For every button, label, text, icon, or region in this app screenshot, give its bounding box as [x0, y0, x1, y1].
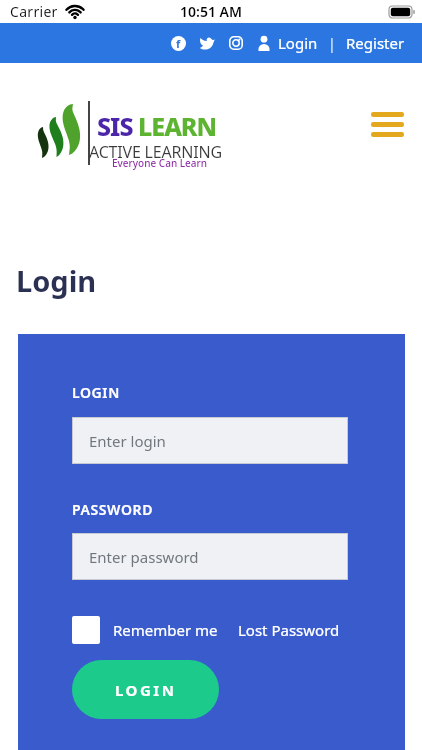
- staticText: Register: [346, 33, 405, 53]
- staticText: |: [328, 34, 336, 53]
- staticText: LOGIN: [72, 383, 120, 402]
- staticText: PASSWORD: [72, 500, 153, 519]
- button[interactable]: [229, 36, 243, 50]
- staticText: f: [176, 36, 181, 51]
- staticText: Login: [278, 33, 318, 53]
- staticText: Everyone Can Learn: [112, 156, 208, 170]
- staticText: LEARN: [138, 109, 217, 143]
- staticText: LOGIN: [115, 680, 177, 700]
- button[interactable]: Login: [278, 33, 318, 53]
- button[interactable]: [72, 616, 100, 644]
- staticText: Login: [16, 261, 97, 300]
- button[interactable]: Enter login: [73, 418, 347, 463]
- button[interactable]: [200, 37, 215, 50]
- button[interactable]: f: [171, 36, 186, 51]
- staticText: ACTIVE LEARNING: [89, 141, 222, 163]
- staticText: Enter password: [89, 547, 199, 567]
- staticText: Lost Password: [238, 620, 340, 640]
- button[interactable]: Register: [346, 33, 405, 53]
- button[interactable]: Lost Password: [238, 620, 340, 640]
- staticText: Enter login: [89, 431, 166, 451]
- button[interactable]: Remember me: [113, 620, 218, 640]
- staticText: SIS: [97, 109, 133, 143]
- button[interactable]: LOGIN: [72, 660, 219, 719]
- staticText: 10:51 AM: [180, 2, 242, 21]
- button[interactable]: Enter password: [73, 534, 347, 579]
- button[interactable]: [256, 35, 272, 51]
- staticText: Carrier: [10, 2, 58, 21]
- staticText: Remember me: [113, 620, 218, 640]
- button[interactable]: [366, 107, 409, 142]
